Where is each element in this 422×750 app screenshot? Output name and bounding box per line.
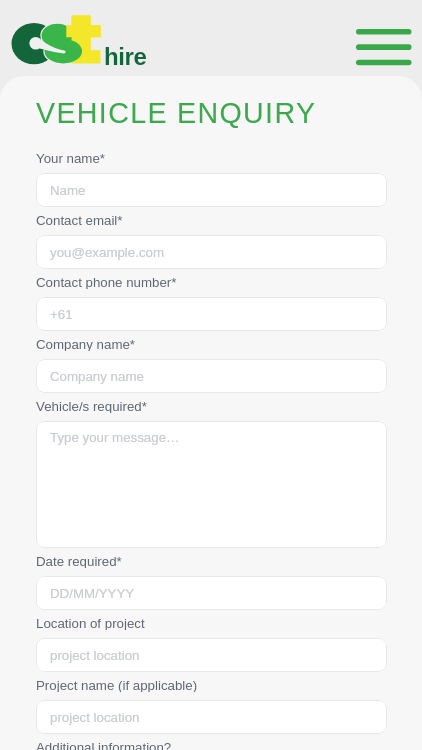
button[interactable]: you@example.com [36, 235, 387, 269]
button[interactable]: project location [36, 638, 387, 672]
staticText: Contact email* [36, 213, 123, 227]
button[interactable]: project location [36, 700, 387, 734]
staticText: Project name (if applicable) [36, 678, 198, 692]
staticText: project location [50, 710, 140, 725]
staticText: DD/MM/YYYY [50, 586, 135, 601]
staticText: Company name [50, 369, 144, 384]
staticText: Additional information? [36, 740, 172, 750]
staticText: Type your message… [50, 430, 180, 445]
button[interactable]: Type your message… [36, 421, 387, 548]
staticText: Name [50, 183, 86, 198]
button[interactable]: DD/MM/YYYY [36, 576, 387, 610]
button[interactable]: Open menu [352, 22, 416, 72]
staticText: Date required* [36, 554, 122, 568]
button[interactable]: Company name [36, 359, 387, 393]
staticText: VEHICLE ENQUIRY [36, 97, 317, 129]
button[interactable]: +61 [36, 297, 387, 331]
staticText: you@example.com [50, 245, 165, 260]
staticText: Location of project [36, 616, 145, 630]
staticText: Contact phone number* [36, 275, 177, 289]
staticText: project location [50, 648, 140, 663]
staticText: Company name* [36, 337, 136, 351]
staticText: Your name* [36, 151, 105, 165]
staticText: hire [104, 43, 147, 70]
staticText: +61 [50, 307, 73, 322]
button[interactable]: Name [36, 173, 387, 207]
staticText: Vehicle/s required* [36, 399, 147, 413]
